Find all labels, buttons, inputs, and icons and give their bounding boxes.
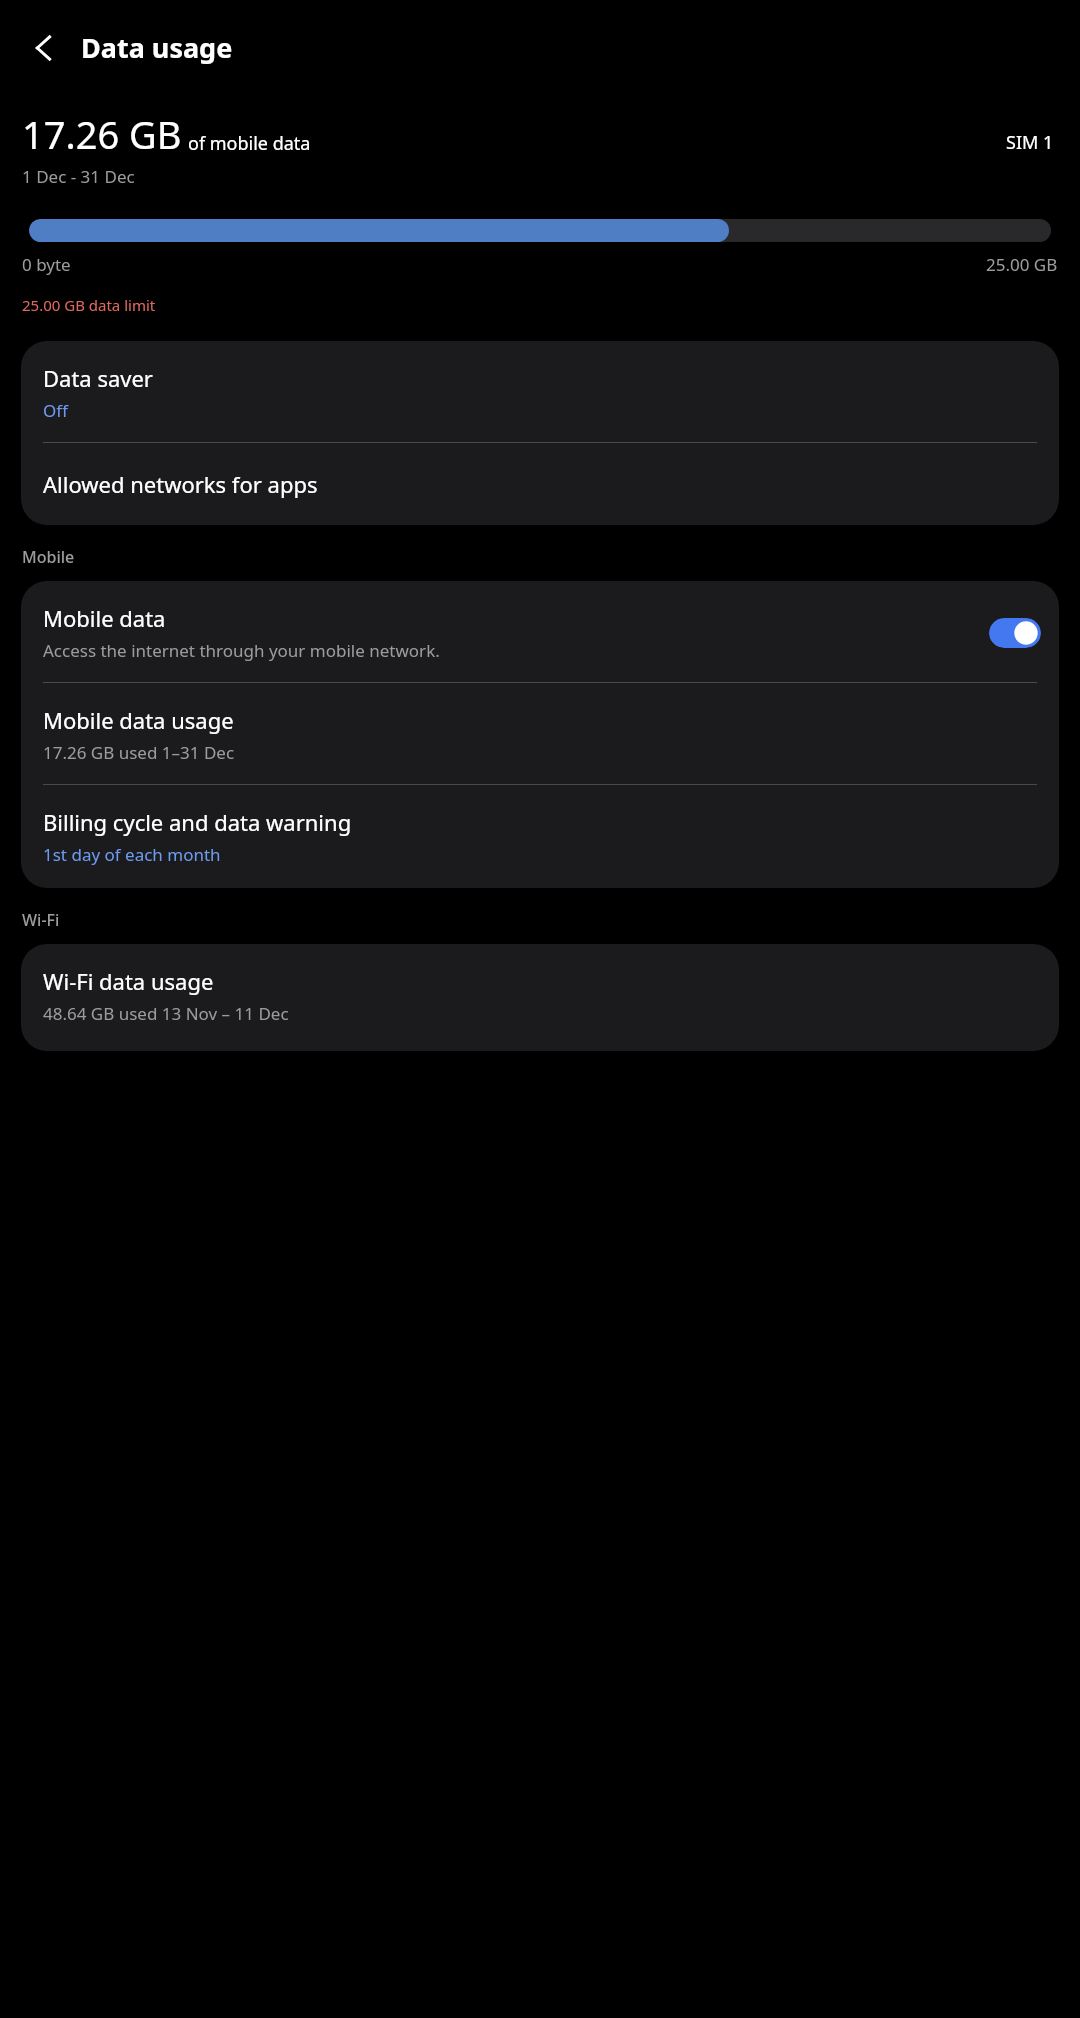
staticText: 17.26 GB bbox=[22, 108, 182, 160]
staticText: 48.64 GB used 13 Nov – 11 Dec bbox=[43, 1002, 289, 1025]
staticText: 1st day of each month bbox=[43, 843, 221, 866]
staticText: Mobile data usage bbox=[43, 705, 234, 735]
staticText: Allowed networks for apps bbox=[43, 469, 318, 499]
staticText: 0 byte bbox=[22, 253, 71, 276]
staticText: SIM 1 bbox=[1006, 130, 1054, 155]
staticText: 25.00 GB bbox=[986, 253, 1058, 276]
staticText: 25.00 GB data limit bbox=[22, 295, 156, 315]
staticText: Billing cycle and data warning bbox=[43, 807, 352, 837]
staticText: Data usage bbox=[81, 29, 233, 66]
button[interactable]: Data saver bbox=[21, 341, 1059, 442]
staticText: Wi-Fi data usage bbox=[43, 966, 214, 996]
button[interactable]: Mobile data toggle bbox=[989, 618, 1041, 648]
staticText: Mobile data bbox=[43, 603, 166, 633]
staticText: 17.26 GB used 1–31 Dec bbox=[43, 741, 235, 764]
staticText: of mobile data bbox=[188, 131, 311, 156]
staticText: Data saver bbox=[43, 363, 153, 393]
button[interactable]: Mobile data bbox=[21, 581, 1059, 682]
staticText: Mobile bbox=[22, 546, 75, 568]
button[interactable]: Billing cycle and data warning bbox=[21, 785, 1059, 888]
button[interactable]: Wi-Fi data usage bbox=[21, 944, 1059, 1051]
staticText: Off bbox=[43, 399, 68, 422]
button[interactable]: Mobile data usage bbox=[21, 683, 1059, 784]
staticText: Access the internet through your mobile … bbox=[43, 639, 440, 662]
button[interactable]: Allowed networks for apps bbox=[21, 443, 1059, 525]
staticText: Wi-Fi bbox=[22, 909, 60, 931]
staticText: 1 Dec - 31 Dec bbox=[22, 165, 135, 188]
button[interactable]: Back bbox=[14, 18, 74, 78]
